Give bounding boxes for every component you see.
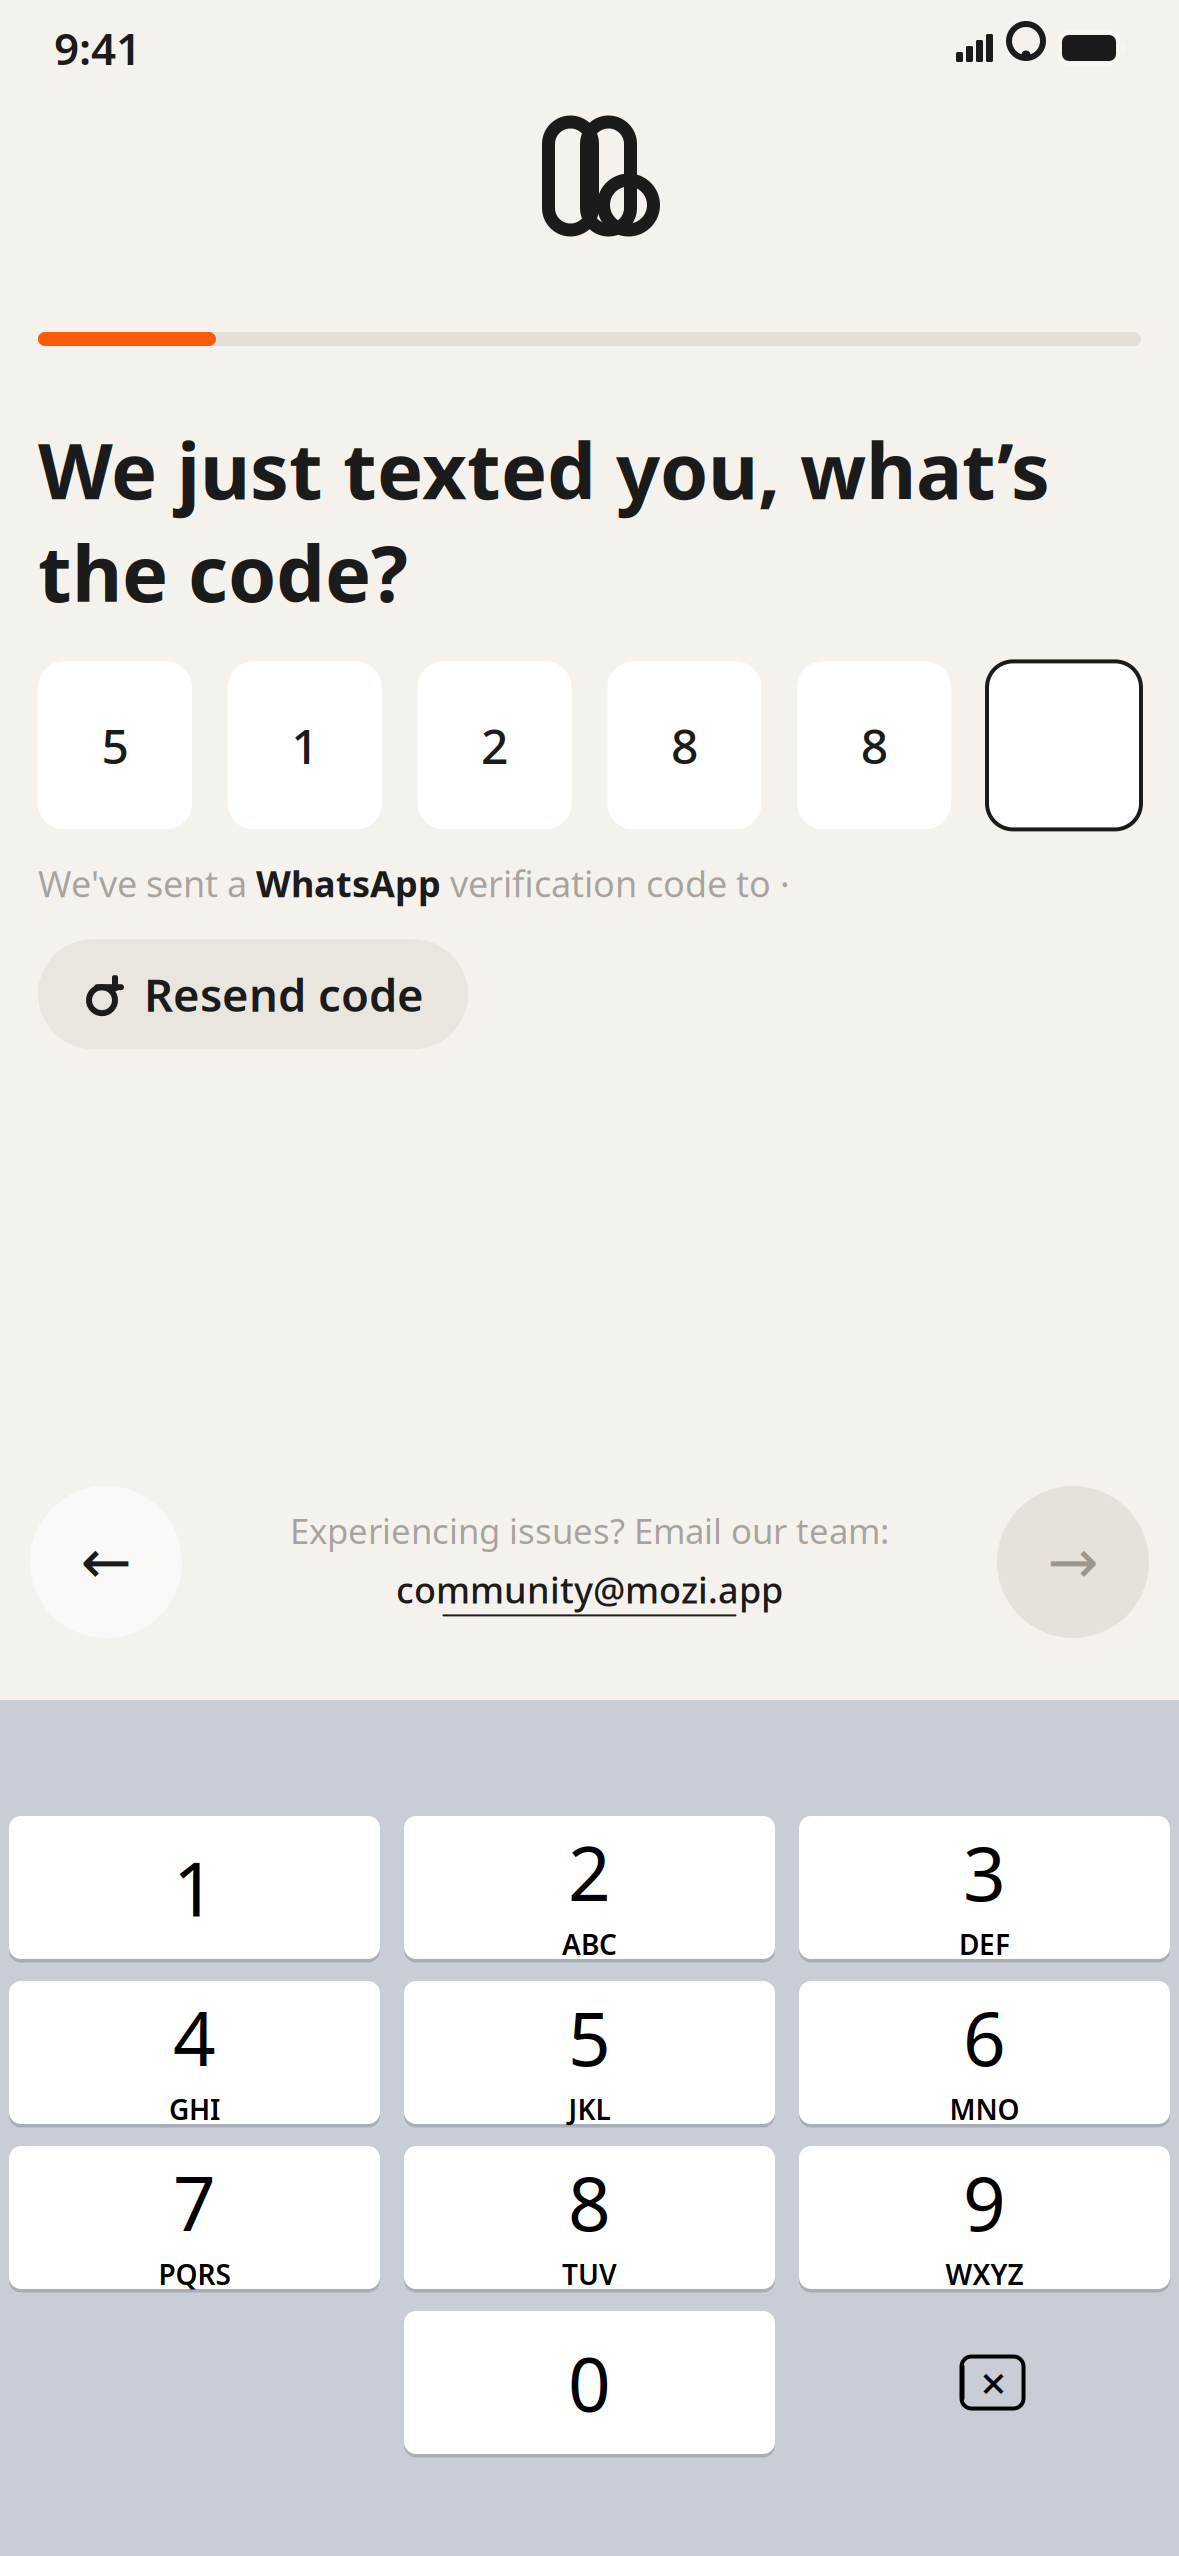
staticText: ← (80, 1527, 131, 1597)
staticText: 9:41 (54, 19, 141, 77)
button[interactable]: 9 (799, 2144, 1170, 2291)
staticText: We just texted you, what’s the code? (38, 418, 1050, 623)
staticText: 9 (963, 2152, 1006, 2251)
staticText: PQRS (158, 2255, 230, 2293)
staticText: JKL (568, 2090, 610, 2128)
button[interactable]: Back (30, 1486, 182, 1638)
staticText: 3 (963, 1822, 1006, 1921)
button[interactable]: 3 (799, 1814, 1170, 1961)
button[interactable]: 1 (9, 1814, 380, 1961)
staticText: 4 (173, 1987, 216, 2086)
staticText: 8 (568, 2152, 611, 2251)
button[interactable]: 5 (404, 1979, 775, 2126)
staticText: 2 (568, 1822, 611, 1921)
button[interactable]: 0 (404, 2309, 775, 2456)
staticText: verification code to · (441, 859, 790, 907)
staticText: 1 (173, 1838, 216, 1937)
staticText: 5 (101, 713, 128, 777)
staticText: ABC (562, 1925, 617, 1963)
staticText: Resend code (144, 964, 424, 1024)
staticText: 6 (963, 1987, 1006, 2086)
button[interactable]: 4 (9, 1979, 380, 2126)
button[interactable]: community@mozi.app (396, 1566, 783, 1616)
staticText: community@mozi.app (396, 1566, 783, 1613)
staticText: → (1047, 1527, 1098, 1597)
staticText: DEF (959, 1925, 1010, 1963)
staticText: WXYZ (945, 2255, 1023, 2293)
staticText: We've sent a (38, 859, 256, 907)
staticText: × (980, 2352, 1006, 2413)
staticText: 0 (568, 2333, 611, 2432)
staticText: MNO (949, 2090, 1019, 2128)
staticText: 8 (861, 713, 888, 777)
button[interactable]: Continue (997, 1486, 1149, 1638)
staticText: Experiencing issues? Email our team: (290, 1508, 889, 1554)
button[interactable]: Delete (799, 2309, 1170, 2456)
staticText: 8 (671, 713, 698, 777)
button[interactable]: Resend code (38, 939, 468, 1049)
button[interactable]: 8 (404, 2144, 775, 2291)
staticText: WhatsApp (256, 859, 441, 907)
staticText: GHI (169, 2090, 220, 2128)
button[interactable]: 7 (9, 2144, 380, 2291)
button[interactable]: 6 (799, 1979, 1170, 2126)
staticText: 5 (568, 1987, 611, 2086)
button[interactable]: 2 (404, 1814, 775, 1961)
staticText: 2 (481, 713, 508, 777)
staticText: 1 (291, 713, 318, 777)
staticText: 7 (173, 2152, 216, 2251)
staticText: TUV (562, 2255, 617, 2293)
